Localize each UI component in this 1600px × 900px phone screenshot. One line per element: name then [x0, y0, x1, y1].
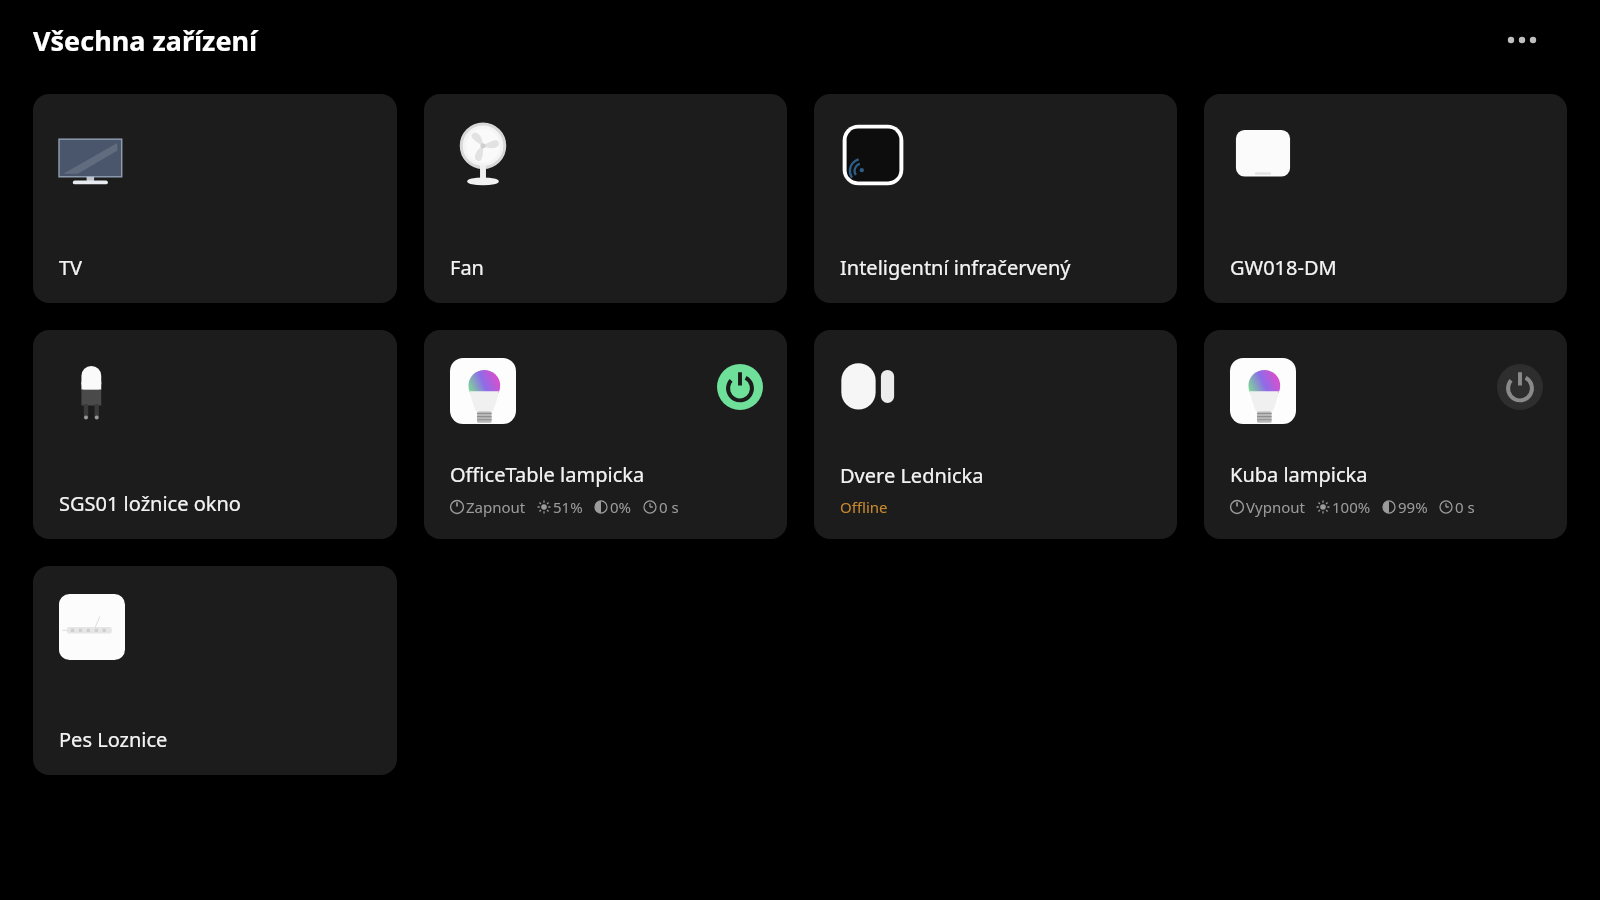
button[interactable]: Dvere Lednicka: [814, 330, 1177, 539]
staticText: Všechna zařízení: [33, 22, 258, 59]
button[interactable]: Turn off: [717, 364, 763, 410]
staticText: Vypnout: [1246, 497, 1305, 517]
staticText: 51%: [553, 497, 583, 517]
button[interactable]: Turn on: [1497, 364, 1543, 410]
staticText: Fan: [450, 254, 484, 281]
button[interactable]: Turn off: [424, 330, 787, 539]
button[interactable]: Fan: [424, 94, 787, 303]
button[interactable]: Pes Loznice: [33, 566, 397, 775]
staticText: 0 s: [1455, 497, 1475, 517]
button[interactable]: Inteligentní infračervený: [814, 94, 1177, 303]
staticText: Dvere Lednicka: [840, 462, 984, 489]
staticText: 0%: [610, 497, 632, 517]
button[interactable]: GW018-DM: [1204, 94, 1567, 303]
staticText: Kuba lampicka: [1230, 461, 1368, 488]
staticText: Zapnout: [466, 497, 526, 517]
staticText: Inteligentní infračervený: [840, 254, 1071, 281]
staticText: 99%: [1398, 497, 1428, 517]
staticText: TV: [59, 254, 83, 281]
button[interactable]: Turn on: [1204, 330, 1567, 539]
staticText: SGS01 ložnice okno: [59, 490, 241, 517]
button[interactable]: SGS01 ložnice okno: [33, 330, 397, 539]
button[interactable]: TV: [33, 94, 397, 303]
staticText: 0 s: [659, 497, 679, 517]
staticText: Offline: [840, 497, 888, 517]
staticText: Pes Loznice: [59, 726, 168, 753]
staticText: OfficeTable lampicka: [450, 461, 645, 488]
button[interactable]: More options: [1502, 20, 1542, 60]
staticText: 100%: [1332, 497, 1371, 517]
staticText: GW018-DM: [1230, 254, 1337, 281]
